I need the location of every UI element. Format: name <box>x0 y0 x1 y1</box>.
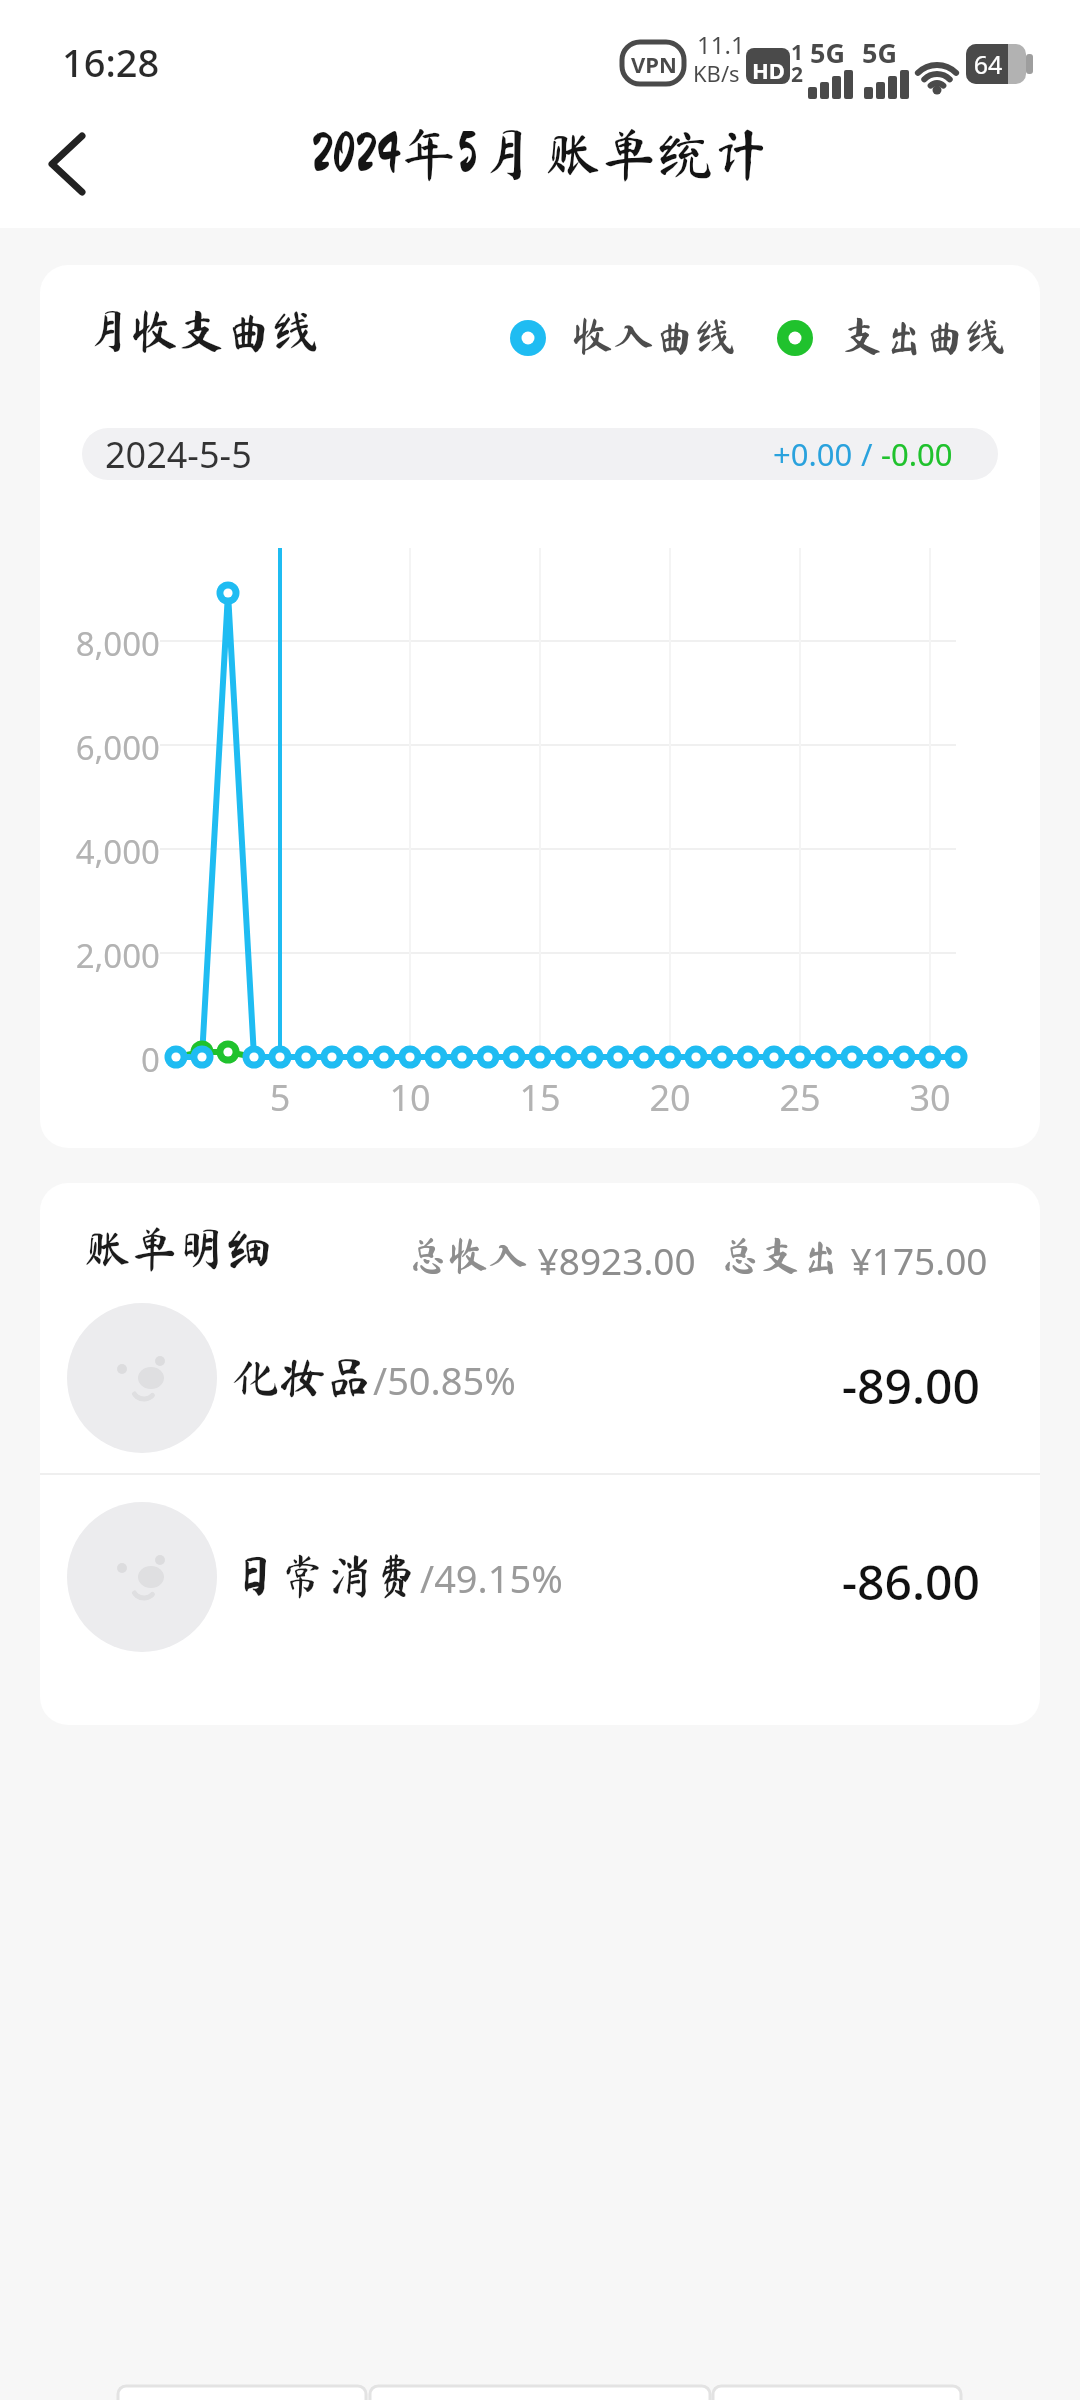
staticText: /50.85% <box>373 1354 516 1406</box>
staticText: -86.00 <box>740 1549 980 1614</box>
staticText: 4,000 <box>60 829 160 874</box>
staticText: 25 <box>760 1073 840 1122</box>
staticText: / <box>853 433 881 475</box>
staticText: 收入曲线 <box>572 315 736 356</box>
staticText: ¥8923.00 <box>528 1235 696 1285</box>
staticText: 总支出 <box>696 1235 841 1275</box>
staticText: 账单明细 <box>84 1225 272 1272</box>
staticText: VPN <box>631 49 677 79</box>
button[interactable] <box>30 120 110 210</box>
button[interactable]: 日常消费 <box>40 1475 1040 1658</box>
staticText: 支出曲线 <box>842 315 1006 356</box>
staticText: +0.00 <box>773 433 853 475</box>
staticText: 11.1 <box>697 28 745 61</box>
staticText: 化妆品 <box>232 1354 373 1401</box>
staticText: 16:28 <box>62 36 160 88</box>
staticText: 2,000 <box>60 933 160 978</box>
staticText: 1 <box>791 38 804 67</box>
staticText: 2024年5月 账单统计 <box>0 126 1080 182</box>
staticText: ¥175.00 <box>841 1235 988 1285</box>
staticText: 月收支曲线 <box>84 307 319 354</box>
staticText: -0.00 <box>881 433 953 475</box>
staticText: 总收入 <box>408 1235 528 1275</box>
staticText: 6,000 <box>60 725 160 770</box>
staticText: 30 <box>890 1073 970 1122</box>
staticText: HD <box>752 55 785 85</box>
staticText: KB/s <box>693 58 740 88</box>
staticText: 5G <box>810 34 845 71</box>
staticText: -89.00 <box>740 1353 980 1418</box>
staticText: 日常消费 <box>232 1552 420 1599</box>
staticText: 0 <box>60 1037 160 1082</box>
staticText: 5G <box>862 34 897 71</box>
staticText: 2024-5-5 <box>105 430 252 479</box>
staticText: 10 <box>370 1073 450 1122</box>
staticText: 5 <box>240 1073 320 1122</box>
staticText: 8,000 <box>60 621 160 666</box>
staticText: 15 <box>500 1073 580 1122</box>
staticText: 20 <box>630 1073 710 1122</box>
staticText: 2 <box>791 60 804 89</box>
staticText: 64 <box>972 47 1004 81</box>
button[interactable]: 化妆品 <box>40 1290 1040 1473</box>
staticText: /49.15% <box>420 1552 563 1604</box>
